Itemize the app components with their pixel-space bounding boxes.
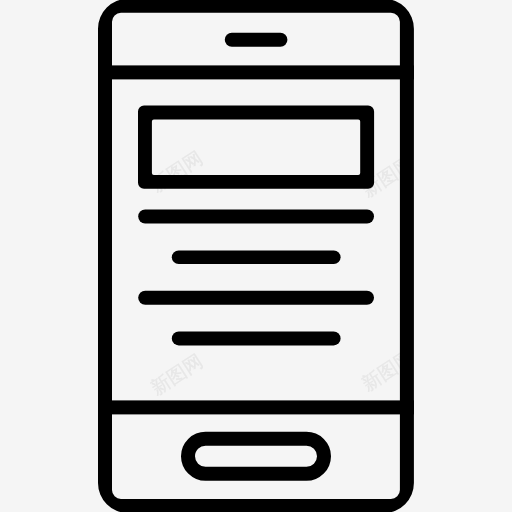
button[interactable]: Smartphone app screen illustration <box>0 0 512 512</box>
